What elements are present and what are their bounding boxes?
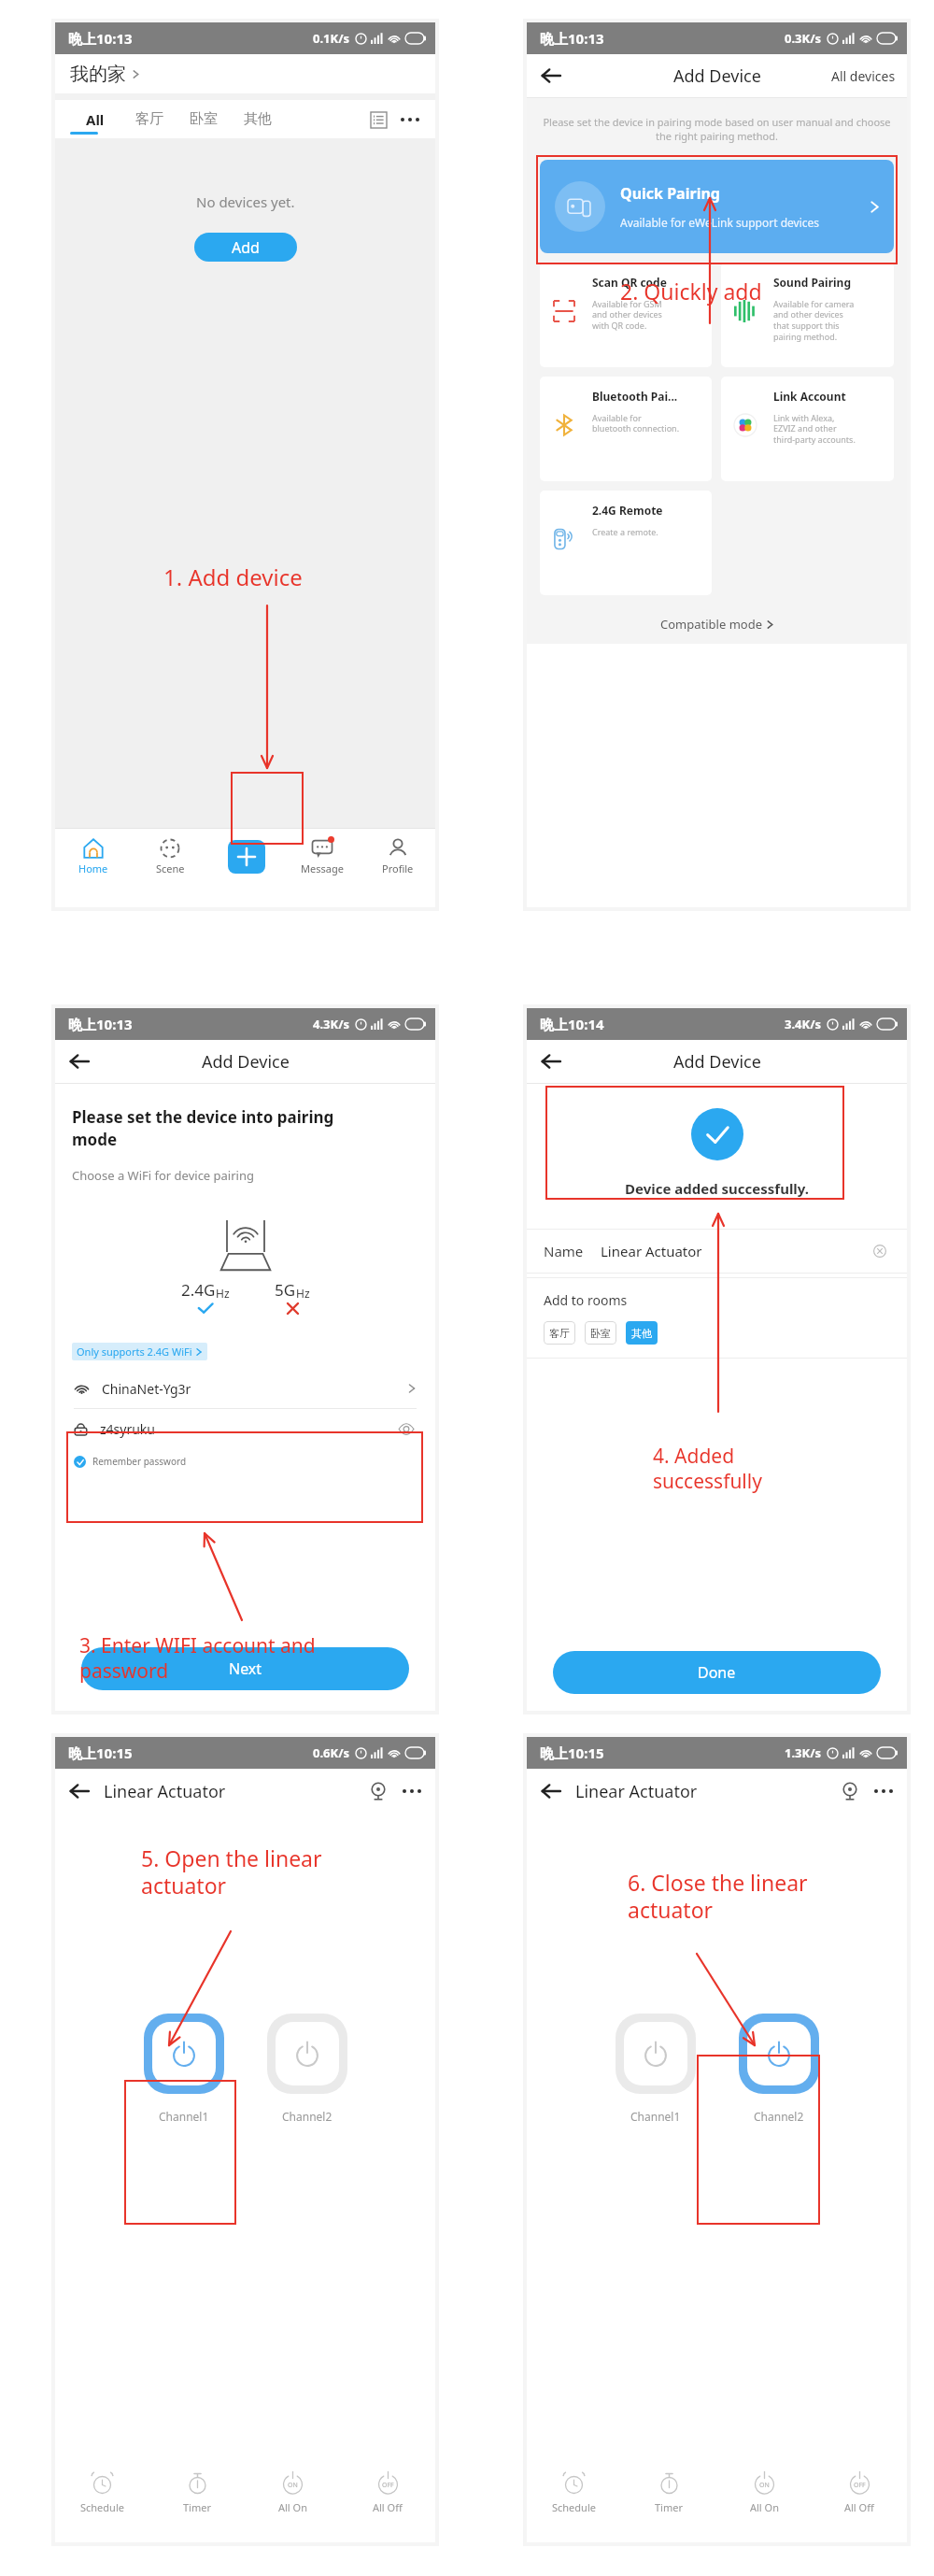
staticText: Available for eWeLink support devices xyxy=(620,215,820,230)
button[interactable]: 我的家 xyxy=(70,63,140,86)
staticText: 2. Quickly add xyxy=(620,277,863,306)
button[interactable]: 2.4G Remote xyxy=(540,491,712,595)
button[interactable]: Remember password xyxy=(74,1455,187,1468)
staticText: 0.6K/s xyxy=(313,1744,350,1761)
staticText: 其他 xyxy=(631,1327,652,1340)
button[interactable]: Home xyxy=(55,829,132,885)
staticText: Create a remote. xyxy=(592,526,658,537)
button[interactable]: Only supports 2.4G WiFi xyxy=(72,1343,207,1360)
button[interactable] xyxy=(152,2022,216,2085)
staticText: Channel2 xyxy=(754,2109,804,2124)
button[interactable]: Add xyxy=(194,233,297,262)
staticText: 6. Close the linear actuator xyxy=(628,1868,908,1925)
staticText: 1.3K/s xyxy=(785,1744,822,1761)
button[interactable] xyxy=(276,2022,339,2085)
button[interactable]: Back xyxy=(61,1043,98,1080)
staticText: Linear Actuator xyxy=(104,1780,226,1803)
staticText: 2.4G xyxy=(181,1279,216,1301)
button[interactable] xyxy=(747,2022,811,2085)
staticText: 卧室 xyxy=(190,110,218,128)
button[interactable]: z4syruku xyxy=(55,1409,435,1448)
button[interactable]: More options xyxy=(394,1773,430,1809)
button[interactable]: Profile xyxy=(360,829,435,885)
staticText: 晚上10:13 xyxy=(540,29,604,48)
staticText: All Off xyxy=(373,2500,403,2514)
button[interactable]: Compatible mode xyxy=(527,616,907,633)
staticText: Only supports 2.4G WiFi xyxy=(77,1345,192,1359)
button[interactable]: ChinaNet-Yg3r xyxy=(55,1369,435,1408)
button[interactable]: Done xyxy=(553,1651,881,1694)
button[interactable]: 其他 xyxy=(626,1321,658,1345)
staticText: 0.1K/s xyxy=(313,30,350,47)
button[interactable]: 客厅 xyxy=(544,1321,575,1345)
staticText: OFF xyxy=(382,2481,394,2490)
button[interactable]: 客厅 xyxy=(122,100,177,138)
staticText: Bluetooth Pai... xyxy=(592,389,678,404)
staticText: 其他 xyxy=(244,110,272,128)
staticText: Message xyxy=(301,861,344,875)
button[interactable]: Clear name xyxy=(870,1241,890,1261)
button[interactable]: Scan QR code xyxy=(540,263,712,367)
staticText: All On xyxy=(750,2500,779,2514)
button[interactable]: Link Account xyxy=(721,377,894,481)
button[interactable]: ON xyxy=(245,2458,340,2527)
staticText: Next xyxy=(229,1658,262,1679)
staticText: Hz xyxy=(296,1286,310,1301)
button[interactable]: OFF xyxy=(812,2458,907,2527)
button[interactable]: Timer xyxy=(621,2458,716,2527)
button[interactable]: 卧室 xyxy=(177,100,231,138)
button[interactable]: Back xyxy=(61,1772,98,1810)
button[interactable]: Back xyxy=(532,57,570,94)
button[interactable]: All xyxy=(68,100,122,138)
button[interactable]: Schedule xyxy=(527,2458,621,2527)
button[interactable]: Scene xyxy=(132,829,208,885)
button[interactable]: All devices xyxy=(831,67,896,85)
button[interactable]: Back xyxy=(532,1772,570,1810)
staticText: Available for bluetooth connection. xyxy=(592,412,680,434)
staticText: Add Device xyxy=(673,1050,761,1074)
staticText: All xyxy=(86,110,105,129)
button[interactable]: Bluetooth Pai... xyxy=(540,377,712,481)
button[interactable]: Quick Pairing xyxy=(540,160,894,253)
staticText: z4syruku xyxy=(100,1420,155,1438)
button[interactable]: More options xyxy=(392,102,428,137)
button[interactable]: OFF xyxy=(340,2458,435,2527)
staticText: 5. Open the linear actuator xyxy=(141,1843,412,1900)
button[interactable]: 其他 xyxy=(231,100,285,138)
button[interactable]: ON xyxy=(716,2458,812,2527)
staticText: Name xyxy=(544,1242,584,1260)
staticText: All Off xyxy=(844,2500,874,2514)
button[interactable]: Device info xyxy=(362,1775,394,1807)
staticText: No devices yet. xyxy=(196,192,295,211)
staticText: Please set the device into pairing mode xyxy=(72,1106,334,1150)
button[interactable]: Schedule xyxy=(55,2458,149,2527)
button[interactable]: Device info xyxy=(834,1775,866,1807)
staticText: All On xyxy=(278,2500,307,2514)
staticText: Link with Alexa, EZVIZ and other third-p… xyxy=(773,412,856,446)
button[interactable]: Back xyxy=(532,1043,570,1080)
button[interactable]: More options xyxy=(866,1773,901,1809)
staticText: Add to rooms xyxy=(544,1291,628,1309)
staticText: Remember password xyxy=(92,1455,187,1468)
staticText: 我的家 xyxy=(70,63,126,86)
button[interactable]: List view xyxy=(364,106,392,134)
staticText: Add Device xyxy=(673,64,761,88)
staticText: Hz xyxy=(216,1286,230,1301)
staticText: Available for GSM and other devices with… xyxy=(592,298,662,332)
staticText: Device added successfully. xyxy=(527,1179,907,1198)
staticText: 客厅 xyxy=(135,110,163,128)
staticText: Scan QR code xyxy=(592,275,667,290)
button[interactable]: Next xyxy=(81,1647,409,1690)
staticText: ChinaNet-Yg3r xyxy=(102,1380,191,1398)
staticText: 1. Add device xyxy=(163,562,406,592)
button[interactable]: Sound Pairing xyxy=(721,263,894,367)
button[interactable]: Timer xyxy=(149,2458,245,2527)
button[interactable]: Message xyxy=(284,829,360,885)
button[interactable]: 卧室 xyxy=(585,1321,616,1345)
button[interactable]: Show password xyxy=(396,1418,417,1439)
button[interactable] xyxy=(624,2022,687,2085)
staticText: Channel1 xyxy=(159,2109,209,2124)
button[interactable]: Add device xyxy=(228,840,265,874)
staticText: Channel1 xyxy=(630,2109,681,2124)
staticText: Timer xyxy=(655,2500,683,2514)
